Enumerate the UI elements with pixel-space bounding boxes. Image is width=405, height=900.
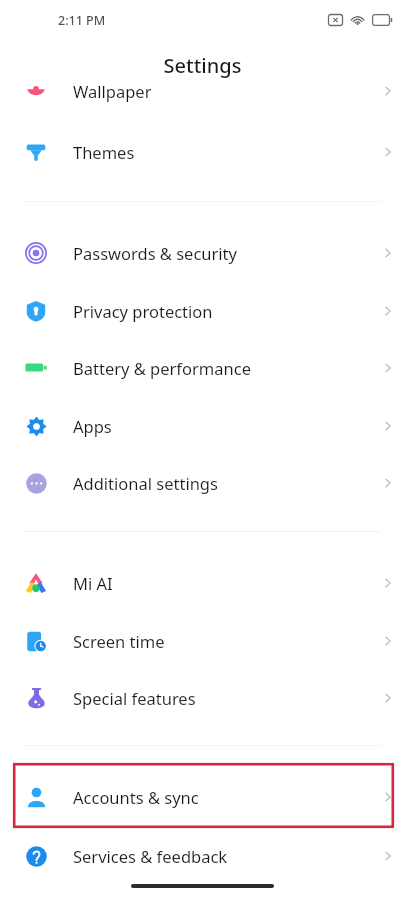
staticText: Additional settings [73,472,371,494]
staticText: 2:11 PM [58,12,106,29]
button[interactable]: Special features [0,675,405,720]
button[interactable]: Services and feedback [0,833,405,878]
button[interactable]: Apps [0,403,405,448]
staticText: Wallpaper [73,80,371,102]
button[interactable]: Accounts and sync [0,774,405,819]
staticText: Battery & performance [73,357,371,379]
staticText: Privacy protection [73,300,371,322]
staticText: Accounts & sync [73,786,371,808]
staticText: Mi AI [73,572,371,594]
button[interactable]: Themes [0,129,405,174]
staticText: Settings [0,52,405,79]
staticText: Services & feedback [73,845,371,867]
button[interactable]: Passwords and security [0,230,405,275]
staticText: Special features [73,687,371,709]
staticText: Screen time [73,630,371,652]
button[interactable]: Screen time [0,618,405,663]
button[interactable]: Mi AI [0,560,405,605]
button[interactable]: Privacy protection [0,288,405,333]
staticText: Apps [73,415,371,437]
button[interactable]: Wallpaper [0,80,405,102]
staticText: Passwords & security [73,242,371,264]
staticText: Themes [73,141,371,163]
button[interactable]: Battery and performance [0,345,405,390]
button[interactable]: Additional settings [0,460,405,505]
